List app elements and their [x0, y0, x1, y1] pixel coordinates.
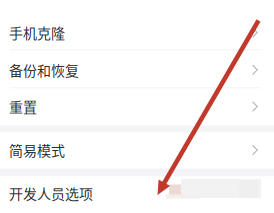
staticText: 开发人员选项	[9, 183, 93, 203]
button[interactable]: 手机克隆	[0, 12, 274, 49]
button[interactable]: 备份和恢复	[0, 50, 274, 87]
staticText: 手机克隆	[9, 22, 65, 43]
button[interactable]: 重置	[0, 88, 274, 125]
staticText: 简易模式	[9, 140, 65, 160]
button[interactable]: 简易模式	[0, 132, 274, 168]
button[interactable]: 开发人员选项	[0, 176, 274, 213]
staticText: 备份和恢复	[9, 60, 79, 80]
staticText: 重置	[9, 96, 37, 117]
